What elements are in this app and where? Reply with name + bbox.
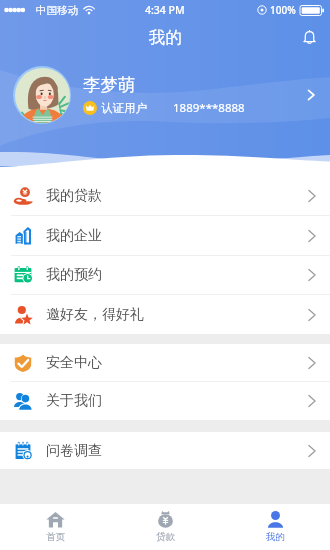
button[interactable]: 李梦萌 xyxy=(0,62,330,128)
staticText: 邀好友，得好礼 xyxy=(46,306,144,324)
staticText: 首页 xyxy=(46,531,65,543)
button[interactable]: 我的预约 xyxy=(0,256,330,294)
button[interactable]: 首页 xyxy=(0,504,110,543)
button[interactable]: 我的 xyxy=(220,504,330,543)
button[interactable]: 问卷调查 xyxy=(0,432,330,469)
staticText: 我的预约 xyxy=(46,266,102,284)
button[interactable]: 我的企业 xyxy=(0,216,330,255)
button[interactable]: 我的贷款 xyxy=(0,176,330,215)
staticText: 我的 xyxy=(149,27,182,48)
staticText: 我的 xyxy=(266,531,285,543)
button[interactable]: 安全中心 xyxy=(0,344,330,381)
staticText: 问卷调查 xyxy=(46,442,102,460)
staticText: 1889***8888 xyxy=(173,100,245,116)
button[interactable]: 邀好友，得好礼 xyxy=(0,295,330,334)
button[interactable]: Notifications xyxy=(296,24,322,50)
button[interactable]: 贷款 xyxy=(110,504,220,543)
staticText: 安全中心 xyxy=(46,354,102,372)
staticText: 4:34 PM xyxy=(145,3,185,17)
staticText: 中国移动 xyxy=(36,4,78,17)
staticText: 我的贷款 xyxy=(46,187,102,205)
staticText: 100% xyxy=(270,3,296,17)
staticText: 关于我们 xyxy=(46,392,102,410)
staticText: 我的企业 xyxy=(46,227,102,245)
staticText: 李梦萌 xyxy=(83,74,136,96)
staticText: 认证用户 xyxy=(101,101,147,115)
staticText: 贷款 xyxy=(156,531,175,543)
button[interactable]: 关于我们 xyxy=(0,382,330,420)
